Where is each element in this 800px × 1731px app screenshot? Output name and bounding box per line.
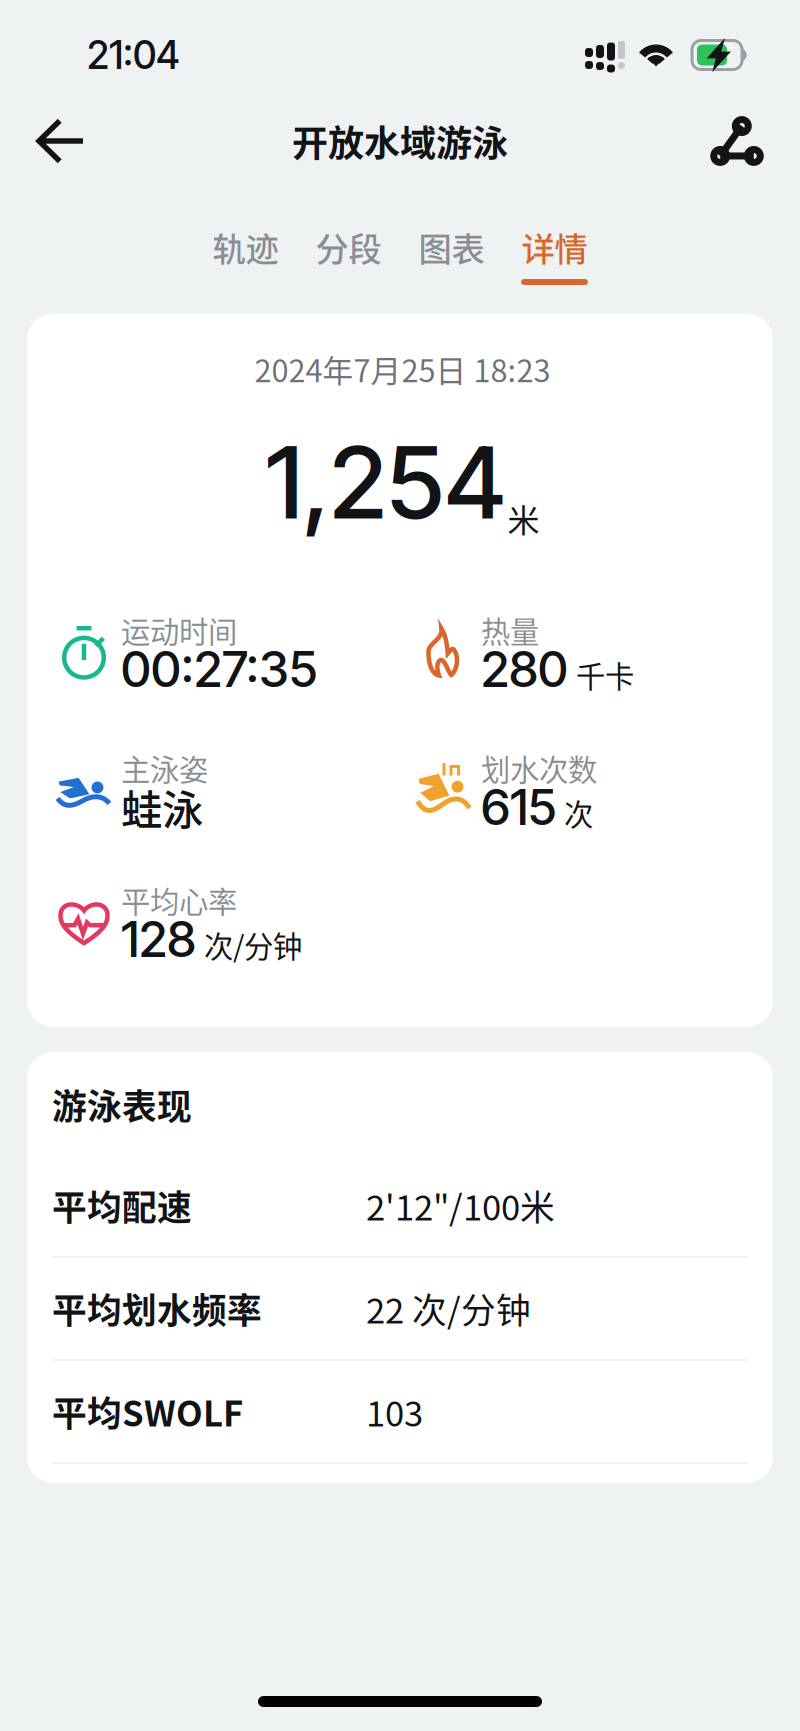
staticText: 2'12"/100米 bbox=[366, 1180, 555, 1231]
staticText: 1,254 bbox=[265, 421, 505, 542]
staticText: 21:04 bbox=[87, 32, 180, 78]
staticText: 22 次/分钟 bbox=[366, 1283, 531, 1334]
staticText: 详情 bbox=[521, 223, 587, 271]
staticText: 热量 bbox=[481, 609, 539, 651]
staticText: 蛙泳 bbox=[121, 777, 203, 837]
button[interactable]: 分享 bbox=[695, 103, 779, 179]
staticText: 280 bbox=[481, 639, 568, 699]
staticText: 轨迹 bbox=[212, 223, 278, 271]
button[interactable]: 返回 bbox=[20, 103, 102, 178]
staticText: 平均心率 bbox=[121, 879, 237, 921]
staticText: 次 bbox=[564, 791, 593, 834]
button[interactable]: 分段 bbox=[315, 190, 382, 314]
staticText: 开放水域游泳 bbox=[292, 115, 508, 167]
staticText: 平均划水频率 bbox=[52, 1283, 262, 1334]
staticText: 主泳姿 bbox=[121, 747, 208, 789]
staticText: 128 bbox=[121, 909, 196, 969]
staticText: 图表 bbox=[418, 223, 484, 271]
button[interactable]: 轨迹 bbox=[212, 190, 279, 314]
staticText: 103 bbox=[366, 1386, 423, 1437]
button[interactable]: 平均SWOLF bbox=[52, 1361, 748, 1462]
staticText: 2024年7月25日 18:23 bbox=[254, 347, 550, 391]
button[interactable]: 平均划水频率 bbox=[52, 1258, 748, 1359]
staticText: 平均配速 bbox=[52, 1180, 192, 1231]
staticText: 次/分钟 bbox=[204, 923, 302, 966]
staticText: 划水次数 bbox=[481, 747, 597, 789]
button[interactable]: 图表 bbox=[418, 190, 485, 314]
staticText: 游泳表现 bbox=[52, 1079, 192, 1130]
button[interactable]: 详情 bbox=[521, 190, 588, 314]
staticText: 千卡 bbox=[576, 653, 634, 696]
staticText: 平均SWOLF bbox=[52, 1386, 243, 1437]
staticText: 米 bbox=[507, 495, 539, 541]
staticText: 运动时间 bbox=[121, 609, 237, 651]
staticText: 615 bbox=[481, 777, 556, 837]
staticText: 分段 bbox=[315, 223, 381, 271]
staticText: 00:27:35 bbox=[121, 639, 317, 699]
button[interactable]: 平均配速 bbox=[52, 1155, 748, 1256]
